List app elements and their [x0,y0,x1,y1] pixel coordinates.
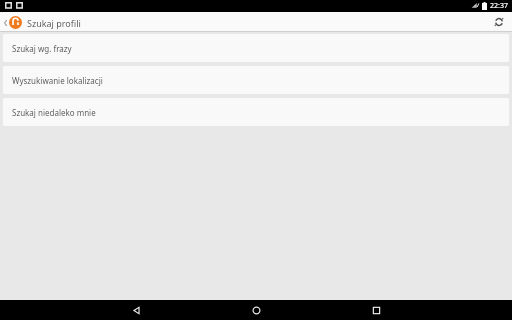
button[interactable]: Refresh [490,13,508,31]
staticText: 22:37 [490,1,508,11]
staticText: Szukaj niedaleko mnie [12,107,96,118]
button[interactable]: Home [216,300,296,320]
button[interactable]: Szukaj niedaleko mnie [3,98,509,126]
button[interactable]: Szukaj profili [3,16,81,29]
button[interactable]: Wyszukiwanie lokalizacji [3,66,509,94]
staticText: Szukaj wg. frazy [12,43,72,54]
button[interactable]: Back [96,300,176,320]
staticText: Szukaj profili [27,17,81,29]
button[interactable]: Recent apps [336,300,416,320]
button[interactable]: Szukaj wg. frazy [3,34,509,62]
staticText: Wyszukiwanie lokalizacji [12,75,103,86]
